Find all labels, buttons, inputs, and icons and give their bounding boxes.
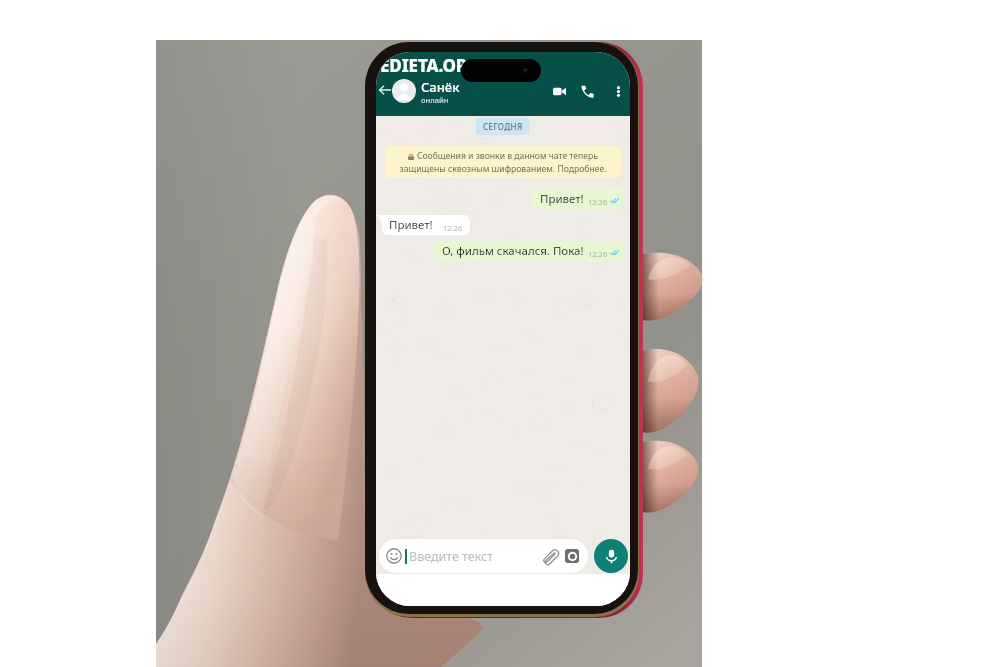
staticText: защищены сквозным шифрованием. Подробнее… — [393, 163, 613, 175]
staticText: 12:26 — [588, 249, 608, 259]
button[interactable]: Сообщения и звонки в данном чате теперь — [385, 146, 621, 178]
button[interactable]: О, фильм скачался. Пока! — [434, 241, 624, 261]
button[interactable]: Voice call — [576, 80, 598, 102]
staticText: 12:26 — [443, 223, 463, 233]
button[interactable]: СЕГОДНЯ — [476, 118, 530, 135]
staticText: Привет! — [389, 217, 433, 233]
button[interactable]: Voice message — [594, 539, 628, 573]
button[interactable]: More options — [607, 80, 629, 102]
staticText: Сообщения и звонки в данном чате теперь — [417, 150, 598, 162]
staticText: Санёк — [421, 78, 460, 96]
button[interactable]: Contact photo — [392, 79, 416, 103]
button[interactable]: Привет! — [532, 189, 624, 209]
staticText: онлайн — [421, 95, 449, 105]
button[interactable]: Привет! — [382, 215, 470, 235]
staticText: Введите текст — [409, 548, 494, 565]
button[interactable]: Camera — [565, 549, 579, 563]
staticText: О, фильм скачался. Пока! — [442, 243, 584, 259]
button[interactable]: Введите текст — [379, 539, 588, 573]
staticText: EDIETA.ORG — [380, 54, 480, 77]
button[interactable]: Back — [376, 81, 394, 99]
staticText: 12:26 — [588, 197, 608, 207]
button[interactable]: Video call — [548, 80, 570, 102]
staticText: СЕГОДНЯ — [483, 121, 523, 132]
staticText: Привет! — [540, 191, 584, 207]
